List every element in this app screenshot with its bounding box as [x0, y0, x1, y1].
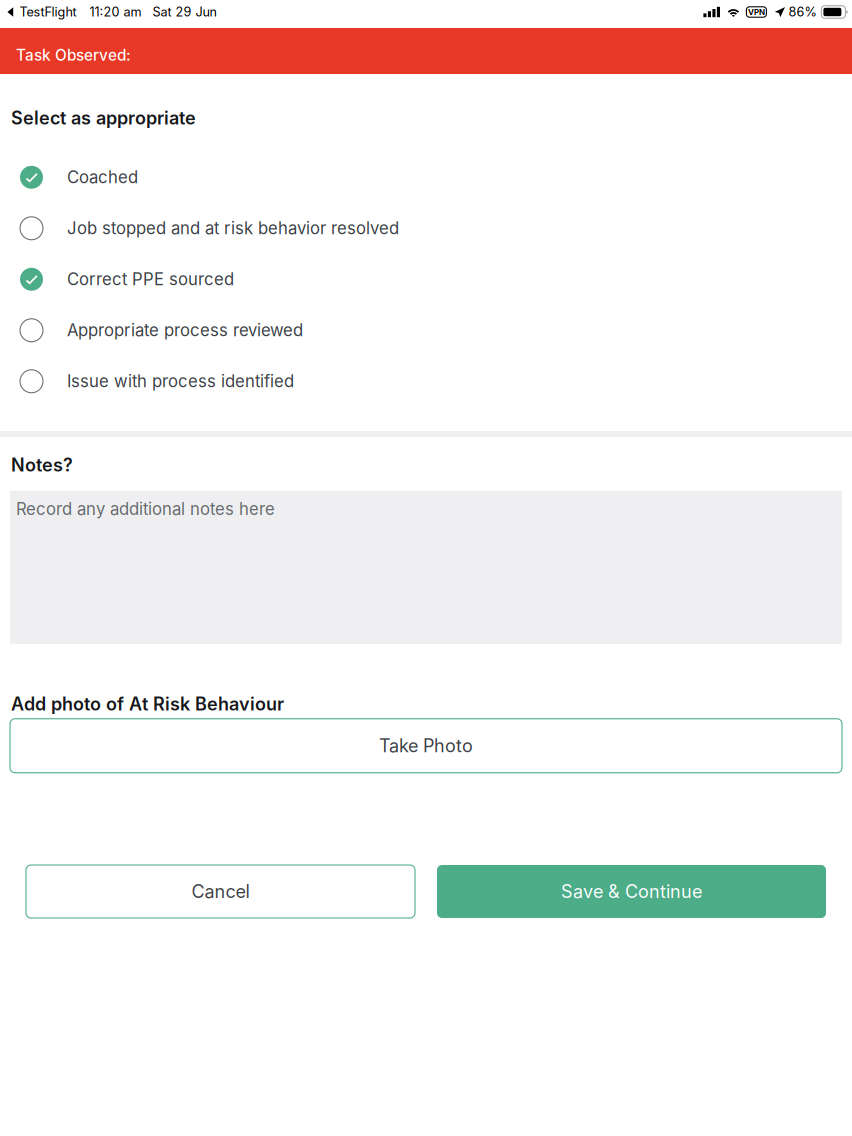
button[interactable]: Take Photo	[0, 719, 852, 773]
button[interactable]: Coached	[0, 152, 852, 203]
button[interactable]: Save & Continue	[437, 865, 826, 918]
staticText: Add photo of At Risk Behaviour	[11, 693, 284, 715]
staticText: Take Photo	[379, 735, 473, 757]
button[interactable]: Correct PPE sourced	[0, 254, 852, 305]
staticText: Record any additional notes here	[16, 499, 275, 519]
staticText: Issue with process identified	[67, 371, 294, 391]
staticText: Cancel	[191, 881, 249, 902]
staticText: VPN	[748, 7, 765, 17]
staticText: Coached	[67, 167, 138, 187]
staticText: TestFlight	[20, 4, 77, 20]
button[interactable]: Issue with process identified	[0, 356, 852, 407]
button[interactable]: Cancel	[26, 865, 415, 918]
staticText: Task Observed:	[16, 46, 131, 65]
staticText: Save & Continue	[561, 881, 702, 902]
staticText: Correct PPE sourced	[67, 269, 234, 289]
staticText: Notes?	[11, 454, 73, 476]
staticText: 86%	[788, 4, 816, 20]
staticText: 11:20 am	[90, 4, 142, 20]
button[interactable]: Appropriate process reviewed	[0, 305, 852, 356]
button[interactable]: Job stopped and at risk behavior resolve…	[0, 203, 852, 254]
staticText: Sat 29 Jun	[153, 4, 217, 20]
staticText: Job stopped and at risk behavior resolve…	[67, 218, 399, 238]
staticText: Select as appropriate	[11, 107, 196, 129]
staticText: Appropriate process reviewed	[67, 320, 303, 340]
